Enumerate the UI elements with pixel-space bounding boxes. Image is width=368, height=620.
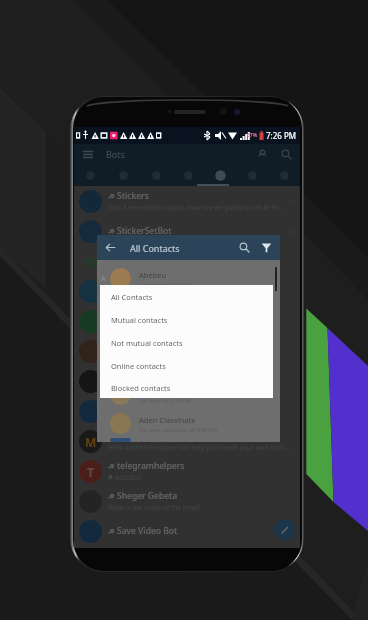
staticText: Abel Clsmate	[139, 299, 185, 309]
button[interactable]: New message	[274, 519, 295, 540]
staticText: TG	[83, 254, 99, 270]
staticText: You: A new sticker's pack. How are we go…	[108, 203, 284, 212]
button[interactable]: M	[74, 426, 300, 456]
button[interactable]: Blocked contacts	[100, 377, 273, 398]
button[interactable]: StickerSetBot	[74, 216, 300, 246]
staticText: 7:26 PM	[266, 130, 297, 141]
staticText: Stickers	[117, 190, 149, 202]
staticText: T	[87, 464, 94, 480]
button[interactable]	[74, 276, 300, 306]
staticText: Not mutual contacts	[111, 338, 183, 348]
button[interactable]	[107, 164, 140, 186]
button[interactable]: Back	[103, 240, 118, 255]
staticText: All Contacts	[111, 292, 153, 302]
button[interactable]: T	[74, 456, 300, 486]
button[interactable]	[74, 366, 300, 396]
staticText: Adane	[139, 438, 162, 442]
button[interactable]: Contacts	[255, 147, 269, 161]
staticText: Sheger Gebeta	[117, 490, 178, 502]
button[interactable]	[140, 164, 172, 186]
button[interactable]: Adane	[97, 438, 280, 442]
button[interactable]: Aden Classmate	[97, 409, 280, 438]
staticText: Bots	[106, 148, 125, 160]
staticText: last seen at 3:58 PM	[139, 281, 191, 288]
button[interactable]	[74, 164, 107, 186]
staticText: last seen yesterday at 9:08 PM	[139, 426, 217, 433]
button[interactable]: Online contacts	[100, 354, 273, 377]
button[interactable]: Search	[237, 240, 252, 255]
button[interactable]: Abera	[97, 351, 280, 380]
button[interactable]	[268, 164, 300, 186]
button[interactable]: Stickers	[74, 186, 300, 216]
staticText: telegramhelpers	[117, 460, 185, 472]
staticText: StickerSetBot	[117, 225, 172, 237]
button[interactable]: Abenezer	[97, 322, 280, 351]
staticText: 67%	[247, 132, 258, 139]
staticText: Abinet	[139, 386, 162, 396]
staticText: Mutual contacts	[111, 315, 168, 325]
button[interactable]: All Contacts	[100, 285, 273, 308]
staticText: last seen at 3:58 PM	[139, 339, 191, 346]
staticText: All Contacts	[130, 242, 180, 254]
button[interactable]	[74, 336, 300, 366]
button[interactable]: Abinet	[97, 380, 280, 409]
button[interactable]: Not mutual contacts	[100, 331, 273, 354]
staticText: A	[101, 274, 106, 284]
button[interactable]	[204, 164, 236, 186]
staticText: Abebeu	[139, 270, 167, 280]
button[interactable]: Save Video Bot	[74, 516, 300, 546]
staticText: AbilityBot	[117, 430, 157, 442]
staticText: Hello Admin! Everyone can help you creat…	[108, 443, 291, 452]
button[interactable]	[74, 396, 300, 426]
button[interactable]: Menu	[81, 147, 95, 161]
staticText: Online contacts	[111, 361, 166, 371]
button[interactable]: Sheger Gebeta	[74, 486, 300, 516]
button[interactable]: Filter	[259, 240, 274, 255]
button[interactable]: Mutual contacts	[100, 308, 273, 331]
staticText: M	[85, 434, 97, 450]
button[interactable]: TG	[74, 246, 300, 276]
staticText: last seen at 3:58 PM	[139, 368, 191, 375]
staticText: Blocked contacts	[111, 383, 171, 393]
button[interactable]	[74, 306, 300, 336]
button[interactable]: Search	[279, 147, 293, 161]
staticText: Aden Classmate	[139, 415, 196, 425]
button[interactable]: Abel Clsmate	[97, 293, 280, 322]
staticText: What is the name of the meal?	[108, 503, 201, 512]
staticText: Abera	[139, 357, 160, 367]
staticText: Save Video Bot	[117, 525, 178, 537]
staticText: Add Bot!	[115, 473, 142, 482]
staticText: last seen at 3:58 PM	[139, 397, 191, 404]
button[interactable]	[172, 164, 204, 186]
button[interactable]	[236, 164, 268, 186]
button[interactable]: A	[97, 264, 280, 293]
